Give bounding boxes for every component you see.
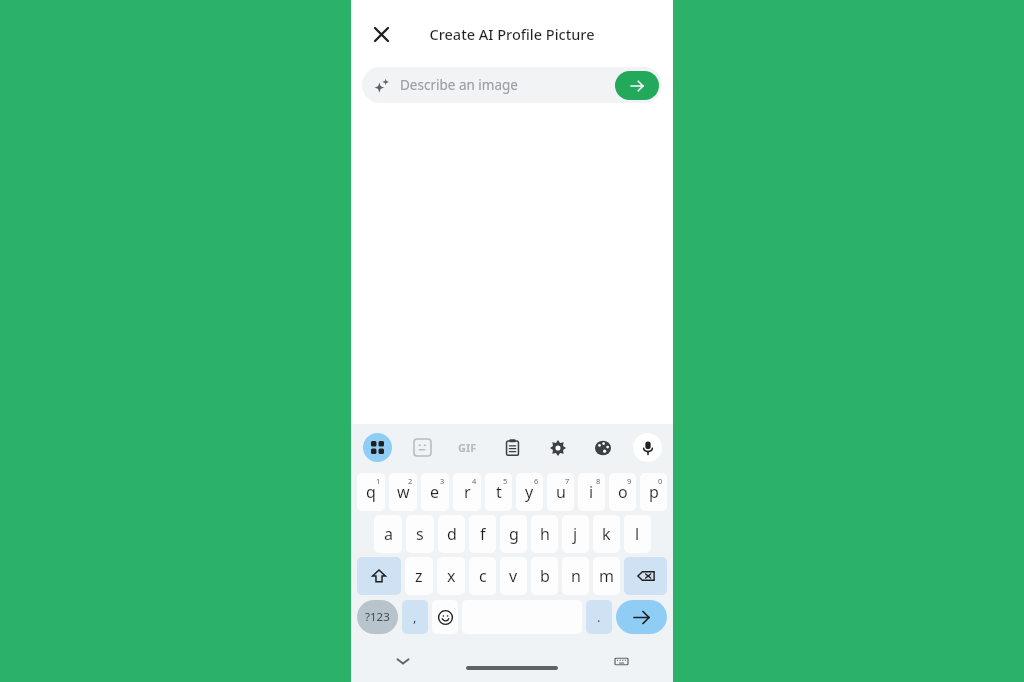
button[interactable]: i xyxy=(578,473,605,511)
staticText: p xyxy=(649,481,659,503)
staticText: , xyxy=(413,608,417,626)
button[interactable]: Shift xyxy=(357,557,401,595)
staticText: e xyxy=(430,481,440,503)
staticText: 9 xyxy=(627,476,632,486)
staticText: a xyxy=(384,523,393,545)
button[interactable]: p xyxy=(640,473,667,511)
button[interactable]: Voice input xyxy=(625,424,670,471)
staticText: ?123 xyxy=(365,609,390,625)
staticText: 3 xyxy=(440,476,445,486)
staticText: n xyxy=(571,565,581,587)
button[interactable]: a xyxy=(374,515,402,553)
staticText: Describe an image xyxy=(400,76,518,94)
button[interactable]: Clipboard xyxy=(490,424,535,471)
button[interactable]: d xyxy=(438,515,465,553)
button[interactable]: Describe an image xyxy=(362,67,662,103)
button[interactable]: Comma xyxy=(402,600,428,634)
staticText: 7 xyxy=(565,476,570,486)
staticText: k xyxy=(602,523,611,545)
staticText: o xyxy=(618,481,628,503)
staticText: . xyxy=(597,608,601,626)
button[interactable]: r xyxy=(453,473,481,511)
button[interactable]: m xyxy=(593,557,620,595)
button[interactable]: u xyxy=(547,473,574,511)
staticText: q xyxy=(366,481,376,503)
staticText: t xyxy=(496,481,502,503)
button[interactable]: Apps xyxy=(354,424,400,471)
button[interactable]: n xyxy=(562,557,589,595)
button[interactable]: y xyxy=(516,473,543,511)
staticText: 8 xyxy=(596,476,601,486)
staticText: h xyxy=(540,523,550,545)
staticText: w xyxy=(397,481,410,503)
button[interactable]: v xyxy=(500,557,527,595)
staticText: Create AI Profile Picture xyxy=(429,24,595,44)
button[interactable]: h xyxy=(531,515,558,553)
button[interactable]: Stickers xyxy=(400,424,445,471)
staticText: m xyxy=(599,565,614,587)
button[interactable]: Period xyxy=(586,600,612,634)
staticText: 0 xyxy=(658,476,663,486)
button[interactable]: x xyxy=(437,557,465,595)
staticText: 2 xyxy=(408,476,413,486)
button[interactable]: e xyxy=(421,473,449,511)
staticText: l xyxy=(635,523,640,545)
staticText: y xyxy=(525,481,534,503)
button[interactable]: b xyxy=(531,557,558,595)
button[interactable]: l xyxy=(624,515,651,553)
staticText: v xyxy=(509,565,518,587)
button[interactable]: f xyxy=(469,515,496,553)
button[interactable]: ?123 xyxy=(357,600,398,634)
staticText: GIF xyxy=(458,440,477,455)
button[interactable]: w xyxy=(389,473,417,511)
staticText: 6 xyxy=(534,476,539,486)
button[interactable]: q xyxy=(357,473,385,511)
button[interactable]: Enter xyxy=(616,600,667,634)
staticText: 4 xyxy=(472,476,477,486)
staticText: s xyxy=(416,523,424,545)
button[interactable]: Change keyboard xyxy=(605,645,637,677)
button[interactable]: Themes xyxy=(580,424,625,471)
staticText: x xyxy=(447,565,456,587)
button[interactable]: Backspace xyxy=(624,557,667,595)
staticText: f xyxy=(480,523,486,545)
button[interactable]: Emoji xyxy=(432,600,458,634)
button[interactable]: Close xyxy=(361,14,401,54)
staticText: b xyxy=(540,565,550,587)
staticText: d xyxy=(447,523,457,545)
button[interactable]: Send xyxy=(615,71,659,100)
staticText: g xyxy=(509,523,519,545)
button[interactable]: GIF xyxy=(445,424,490,471)
button[interactable]: c xyxy=(469,557,496,595)
staticText: 1 xyxy=(376,476,381,486)
button[interactable]: k xyxy=(593,515,620,553)
staticText: r xyxy=(464,481,471,503)
staticText: z xyxy=(415,565,423,587)
button[interactable]: j xyxy=(562,515,589,553)
button[interactable]: z xyxy=(405,557,433,595)
button[interactable]: g xyxy=(500,515,527,553)
staticText: i xyxy=(589,481,594,503)
button[interactable]: t xyxy=(485,473,512,511)
staticText: j xyxy=(573,523,578,545)
staticText: 5 xyxy=(503,476,508,486)
button[interactable]: Hide keyboard xyxy=(387,645,419,677)
button[interactable]: s xyxy=(406,515,434,553)
staticText: c xyxy=(479,565,487,587)
button[interactable]: Settings xyxy=(535,424,580,471)
button[interactable]: o xyxy=(609,473,636,511)
staticText: u xyxy=(556,481,566,503)
